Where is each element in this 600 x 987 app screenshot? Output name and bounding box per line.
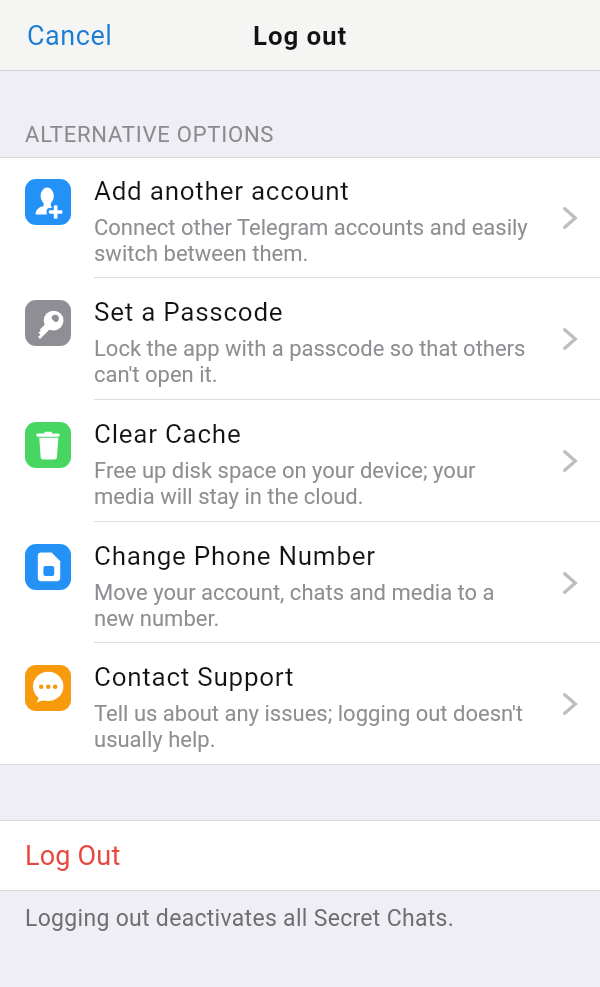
other: Open Set a Passcode [540, 278, 600, 400]
button[interactable]: Change Phone Number [0, 522, 600, 643]
button[interactable]: Clear Cache [0, 400, 600, 522]
staticText: Logging out deactivates all Secret Chats… [25, 905, 455, 932]
staticText: Log out [253, 21, 348, 51]
staticText: Add another account [94, 176, 350, 206]
staticText: Connect other Telegram accounts and easi… [94, 215, 540, 267]
button[interactable]: Add another account [0, 158, 600, 278]
staticText: Contact Support [94, 662, 295, 692]
button[interactable]: Log Out [0, 821, 600, 890]
staticText: Set a Passcode [94, 297, 284, 327]
staticText: Cancel [27, 20, 113, 52]
other: Open Clear Cache [540, 400, 600, 522]
other: Open Add another account [540, 158, 600, 278]
staticText: Lock the app with a passcode so that oth… [94, 336, 540, 388]
staticText: Log Out [25, 840, 121, 871]
other: Open Contact Support [540, 643, 600, 764]
button[interactable]: Cancel [0, 0, 135, 71]
staticText: Move your account, chats and media to a … [94, 580, 540, 632]
staticText: Clear Cache [94, 419, 242, 449]
button[interactable]: Contact Support [0, 643, 600, 764]
staticText: Free up disk space on your device; your … [94, 458, 540, 510]
staticText: ALTERNATIVE OPTIONS [25, 122, 275, 148]
button[interactable]: Set a Passcode [0, 278, 600, 400]
staticText: Tell us about any issues; logging out do… [94, 701, 540, 753]
other: Open Change Phone Number [540, 522, 600, 643]
staticText: Change Phone Number [94, 541, 376, 571]
